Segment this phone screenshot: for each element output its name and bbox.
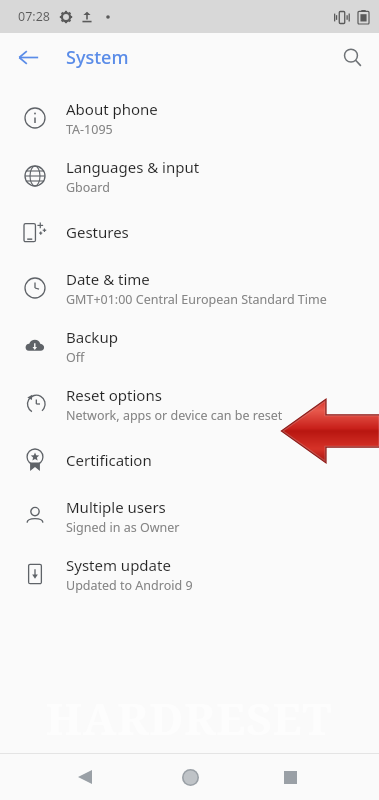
button[interactable]: Date & time [0, 259, 379, 317]
button[interactable]: Backup [0, 317, 379, 375]
staticText: About phone [66, 99, 158, 119]
button[interactable]: Gestures [0, 205, 379, 259]
staticText: Date & time [66, 269, 150, 289]
button[interactable]: Certification [0, 433, 379, 487]
staticText: Updated to Android 9 [66, 577, 193, 594]
staticText: Gestures [66, 222, 129, 242]
staticText: Languages & input [66, 157, 200, 177]
button[interactable]: Reset options [0, 375, 379, 433]
button[interactable]: Search [332, 37, 372, 77]
button[interactable]: Back [8, 37, 48, 77]
staticText: Network, apps or device can be reset [66, 407, 283, 424]
button[interactable]: Languages & input [0, 147, 379, 205]
staticText: Reset options [66, 385, 162, 405]
staticText: GMT+01:00 Central European Standard Time [66, 291, 327, 308]
staticText: System update [66, 555, 171, 575]
button[interactable]: Multiple users [0, 487, 379, 545]
button[interactable]: System update [0, 545, 379, 603]
button[interactable]: Home [167, 754, 213, 800]
staticText: System [66, 45, 129, 70]
staticText: Gboard [66, 179, 110, 196]
button[interactable]: Recent apps [267, 754, 313, 800]
button[interactable]: About phone [0, 89, 379, 147]
button[interactable]: Back [62, 754, 108, 800]
staticText: Certification [66, 450, 152, 470]
staticText: Backup [66, 327, 118, 347]
staticText: 07:28 [18, 8, 50, 25]
staticText: Signed in as Owner [66, 519, 180, 536]
staticText: Off [66, 349, 85, 366]
staticText: Multiple users [66, 497, 166, 517]
staticText: TA-1095 [66, 121, 113, 138]
